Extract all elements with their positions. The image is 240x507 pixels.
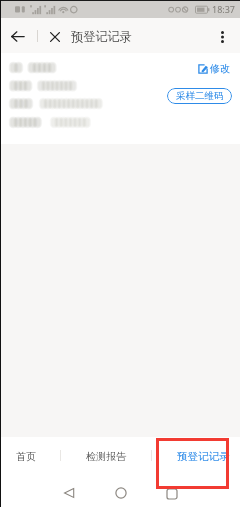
staticText: 修改	[210, 62, 230, 75]
button[interactable]: More options	[207, 19, 237, 54]
staticText: 预登记记录	[177, 450, 230, 463]
button[interactable]: Back	[57, 483, 81, 503]
button[interactable]: Back	[5, 19, 31, 54]
staticText: 预登记记录	[71, 29, 132, 44]
button[interactable]: 检测报告	[61, 437, 151, 486]
staticText: 18:37	[212, 3, 236, 15]
staticText: 检测报告	[86, 450, 126, 463]
staticText: 采样二维码	[176, 90, 224, 102]
button[interactable]: 预登记记录	[159, 437, 240, 486]
button[interactable]: Close	[44, 19, 66, 54]
button[interactable]: Recent apps	[160, 484, 184, 504]
button[interactable]: 首页	[0, 437, 51, 486]
button[interactable]: 采样二维码	[167, 88, 232, 104]
button[interactable]: Home	[109, 483, 133, 503]
button[interactable]: 修改	[196, 61, 232, 76]
staticText: 首页	[16, 450, 36, 463]
